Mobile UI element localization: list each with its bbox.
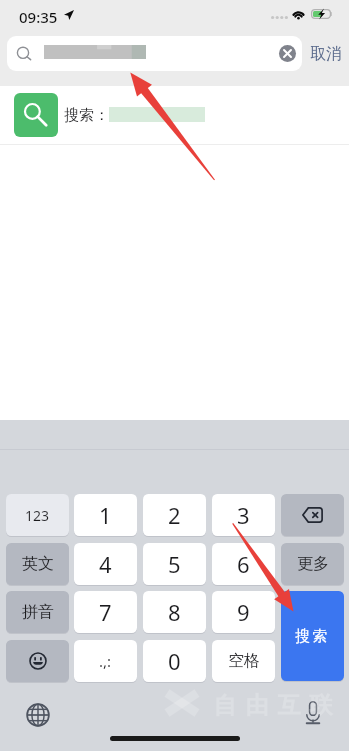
staticText: 8 <box>168 597 181 627</box>
button[interactable]: 空格 <box>212 640 275 682</box>
button[interactable]: 5 <box>143 543 206 585</box>
staticText: 7 <box>99 597 112 627</box>
staticText: 英文 <box>22 554 54 574</box>
button[interactable]: 3 <box>212 494 275 536</box>
staticText: 9 <box>237 597 250 627</box>
button[interactable]: Voice input <box>306 701 320 724</box>
staticText: 0 <box>168 646 181 676</box>
staticText: 空格 <box>228 651 260 671</box>
staticText: 123 <box>25 506 50 525</box>
button[interactable]: 123 <box>6 494 69 536</box>
button[interactable]: 2 <box>143 494 206 536</box>
staticText: 拼音 <box>22 602 54 622</box>
button[interactable]: 更多 <box>281 543 344 585</box>
button[interactable]: 7 <box>74 591 137 633</box>
staticText: 搜索 <box>295 627 330 646</box>
staticText: 09:35 <box>19 7 58 27</box>
staticText: 取消 <box>310 44 342 64</box>
staticText: 2 <box>168 500 181 530</box>
staticText: 更多 <box>297 554 329 574</box>
button[interactable]: 拼音 <box>6 591 69 633</box>
button[interactable]: 8 <box>143 591 206 633</box>
button[interactable]: 英文 <box>6 543 69 585</box>
button[interactable]: 0 <box>143 640 206 682</box>
button[interactable] <box>281 494 344 536</box>
button[interactable]: 9 <box>212 591 275 633</box>
button[interactable]: 取消 <box>302 36 342 71</box>
button[interactable]: 6 <box>212 543 275 585</box>
button[interactable]: 4 <box>74 543 137 585</box>
staticText: 3 <box>237 500 250 530</box>
staticText: 自由互联 <box>209 691 337 720</box>
button[interactable]: .,: <box>74 640 137 682</box>
button[interactable]: Switch keyboard language <box>26 703 50 727</box>
staticText: .,: <box>99 651 112 671</box>
staticText: 6 <box>237 549 250 579</box>
button[interactable]: Clear search text <box>279 45 296 62</box>
staticText: 搜索： <box>64 106 109 125</box>
button[interactable]: 搜索 <box>281 591 344 681</box>
button[interactable]: Clear search text <box>7 36 302 71</box>
button[interactable]: 搜索： <box>0 86 349 144</box>
staticText: 4 <box>99 549 112 579</box>
staticText: 5 <box>168 549 181 579</box>
staticText: 1 <box>99 500 112 530</box>
button[interactable]: 1 <box>74 494 137 536</box>
button[interactable] <box>6 640 69 682</box>
